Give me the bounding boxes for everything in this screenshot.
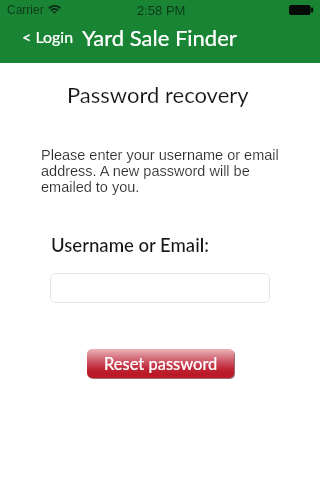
staticText: Reset password <box>104 354 218 374</box>
staticText: 2:58 PM <box>137 3 186 18</box>
staticText: Yard Sale Finder <box>82 24 237 50</box>
other: Battery <box>289 5 313 15</box>
button[interactable]: < Login <box>14 23 82 50</box>
staticText: Password recovery <box>67 81 249 107</box>
staticText: Please enter your username or email addr… <box>41 147 281 195</box>
staticText: Carrier <box>7 3 44 16</box>
staticText: < Login <box>22 27 74 46</box>
button[interactable] <box>50 273 270 303</box>
other: Wi-Fi <box>48 4 61 14</box>
staticText: Username or Email: <box>51 234 209 256</box>
button[interactable]: Reset password <box>87 349 234 378</box>
